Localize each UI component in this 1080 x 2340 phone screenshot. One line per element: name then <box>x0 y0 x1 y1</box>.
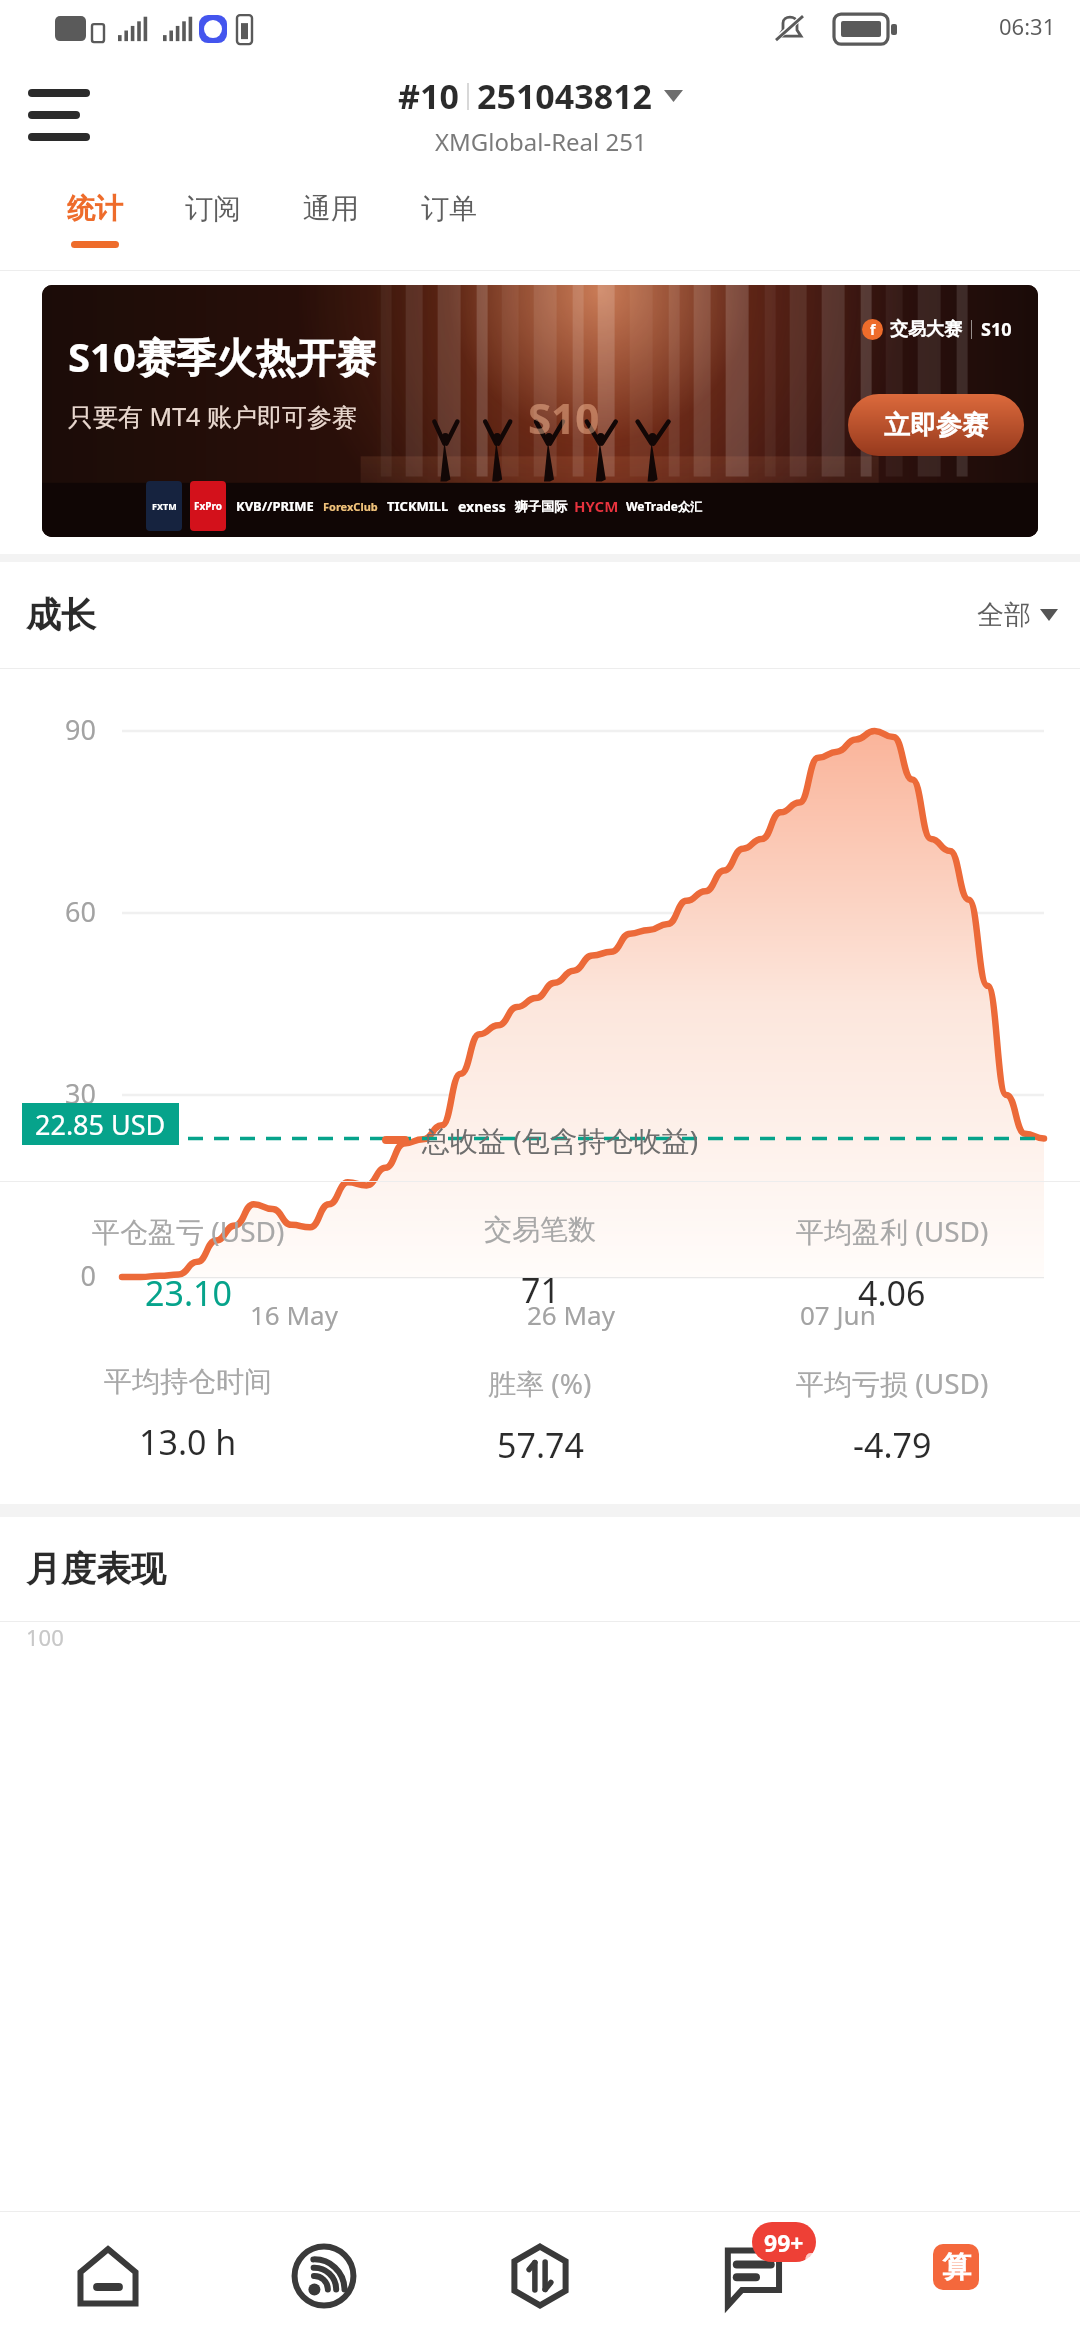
staticText: 立即参赛 <box>884 409 988 442</box>
staticText: 狮子国际 <box>515 498 567 514</box>
staticText: 月度表现 <box>26 1547 166 1591</box>
button[interactable]: 订阅 <box>154 178 272 270</box>
staticText: 4.06 <box>858 1270 926 1316</box>
button[interactable]: 通用 <box>272 178 390 270</box>
staticText: 13.0 h <box>139 1419 237 1465</box>
button[interactable]: Signals <box>216 2212 432 2340</box>
button[interactable]: 全部 <box>977 598 1058 632</box>
staticText: 22.85 USD <box>35 1106 166 1143</box>
staticText: 60 <box>0 893 96 930</box>
staticText: 只要有 MT4 账户即可参赛 <box>68 399 357 433</box>
staticText: 90 <box>0 711 96 748</box>
staticText: exness <box>458 497 506 516</box>
staticText: 统计 <box>67 191 123 226</box>
staticText: 平均持仓时间 <box>104 1364 272 1399</box>
staticText: XMGlobal-Real 251 <box>435 125 647 158</box>
staticText: 订单 <box>421 191 477 226</box>
button[interactable]: #10 <box>398 73 683 158</box>
staticText: 0 <box>0 1257 96 1294</box>
button[interactable]: S10赛季火热开赛 <box>42 285 1038 537</box>
staticText: S10 <box>981 317 1012 342</box>
staticText: 100 <box>26 1622 64 1652</box>
staticText: 全部 <box>977 598 1031 632</box>
staticText: FXTM <box>152 500 177 512</box>
staticText: 99+ <box>764 2227 804 2258</box>
staticText: -4.79 <box>853 1422 932 1468</box>
staticText: 总收益 (包含持仓收益) <box>422 1121 699 1159</box>
staticText: 交易大赛 <box>890 318 962 341</box>
button[interactable]: Messages <box>648 2212 864 2340</box>
staticText: 通用 <box>303 191 359 226</box>
staticText: 23.10 <box>145 1270 232 1316</box>
staticText: HYCM <box>574 496 619 516</box>
staticText: 06:31 <box>999 11 1056 41</box>
staticText: FxPro <box>194 499 222 513</box>
button[interactable]: 订单 <box>390 178 508 270</box>
staticText: KVB//PRIME <box>236 497 314 515</box>
staticText: S10 <box>528 389 600 446</box>
staticText: 订阅 <box>185 191 241 226</box>
staticText: 算 <box>942 2249 971 2286</box>
button[interactable]: Home <box>0 2212 216 2340</box>
staticText: 26 May <box>527 1297 615 1332</box>
staticText: 16 May <box>250 1297 338 1332</box>
staticText: 07 Jun <box>800 1297 876 1332</box>
staticText: #10 <box>398 73 459 119</box>
staticText: S10赛季火热开赛 <box>68 329 376 384</box>
button[interactable]: Trade <box>432 2212 648 2340</box>
staticText: 71 <box>521 1267 560 1313</box>
staticText: 251043812 <box>477 73 653 119</box>
staticText: 平均亏损 (USD) <box>796 1364 989 1402</box>
staticText: 57.74 <box>497 1422 584 1468</box>
staticText: WeTrade众汇 <box>626 498 702 514</box>
staticText: 交易笔数 <box>484 1212 596 1247</box>
staticText: 平均盈利 (USD) <box>796 1212 989 1250</box>
staticText: TICKMILL <box>387 497 449 515</box>
staticText: f <box>870 320 876 339</box>
staticText: ƒ)@南筝 <box>799 2241 933 2292</box>
button[interactable]: 统计 <box>36 178 154 270</box>
button[interactable]: 立即参赛 <box>848 394 1024 456</box>
staticText: 胜率 (%) <box>488 1364 592 1402</box>
staticText: 成长 <box>26 593 96 637</box>
button[interactable]: Menu <box>22 78 96 152</box>
staticText: ForexClub <box>323 499 378 514</box>
staticText: 平仓盈亏 (USD) <box>92 1212 285 1250</box>
staticText: 30 <box>0 1075 96 1112</box>
